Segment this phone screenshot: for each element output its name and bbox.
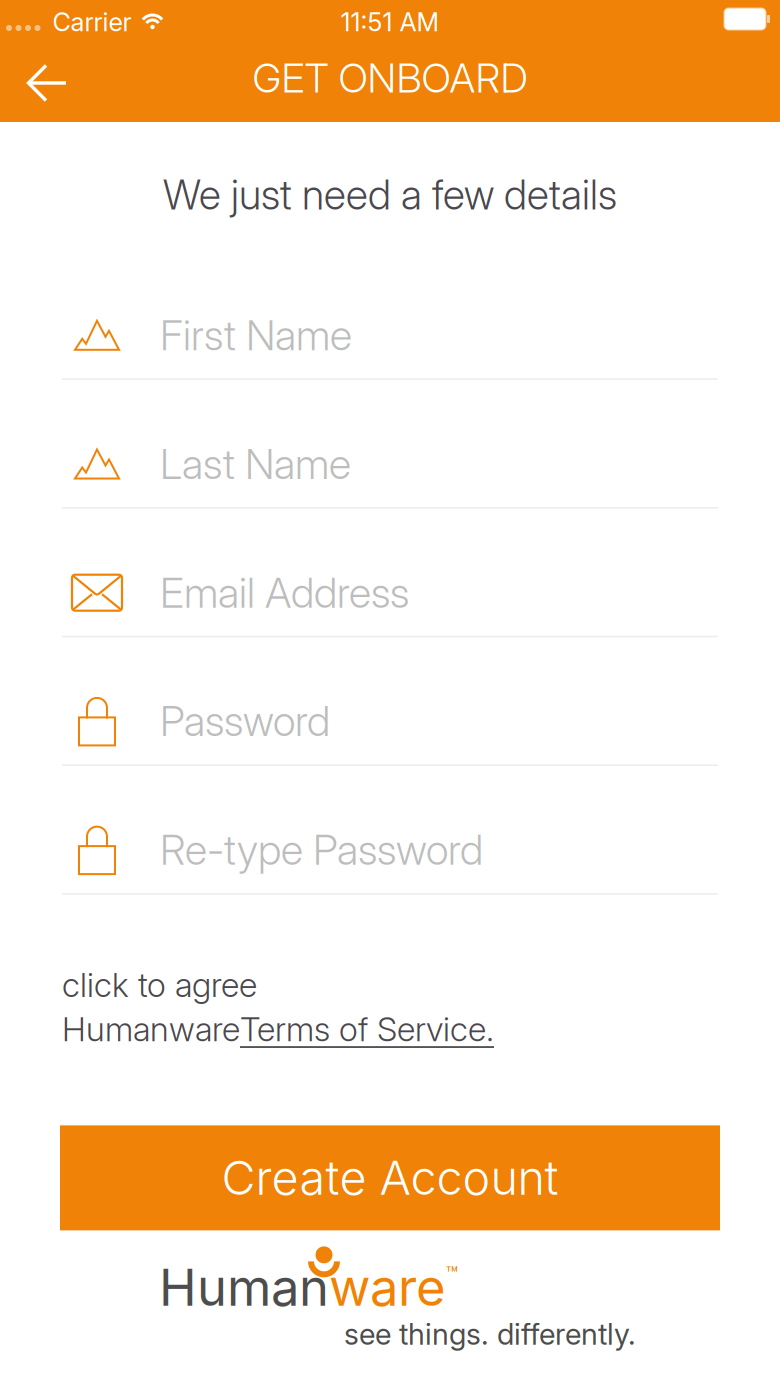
staticText: ware bbox=[329, 1257, 446, 1318]
button[interactable]: Back bbox=[0, 44, 86, 122]
staticText: Email Address bbox=[160, 568, 409, 618]
staticText: First Name bbox=[160, 310, 352, 360]
staticText: click to agree bbox=[62, 965, 257, 1005]
staticText: GET ONBOARD bbox=[252, 54, 527, 102]
staticText: 11:51 AM bbox=[340, 7, 439, 37]
staticText: Terms of Service. bbox=[240, 1009, 494, 1049]
staticText: ™ bbox=[446, 1261, 458, 1285]
staticText: Re-type Password bbox=[160, 825, 483, 875]
staticText: Last Name bbox=[160, 439, 351, 489]
staticText: Password bbox=[160, 696, 330, 746]
button[interactable]: Create Account bbox=[60, 1125, 720, 1230]
staticText: Humanware bbox=[62, 1009, 240, 1049]
staticText: Human bbox=[159, 1257, 329, 1318]
button[interactable]: Terms of Service. bbox=[240, 1009, 494, 1049]
staticText: Carrier bbox=[52, 7, 131, 37]
staticText: Create Account bbox=[221, 1150, 558, 1206]
staticText: see things. differently. bbox=[344, 1316, 636, 1352]
staticText: We just need a few details bbox=[163, 170, 617, 219]
